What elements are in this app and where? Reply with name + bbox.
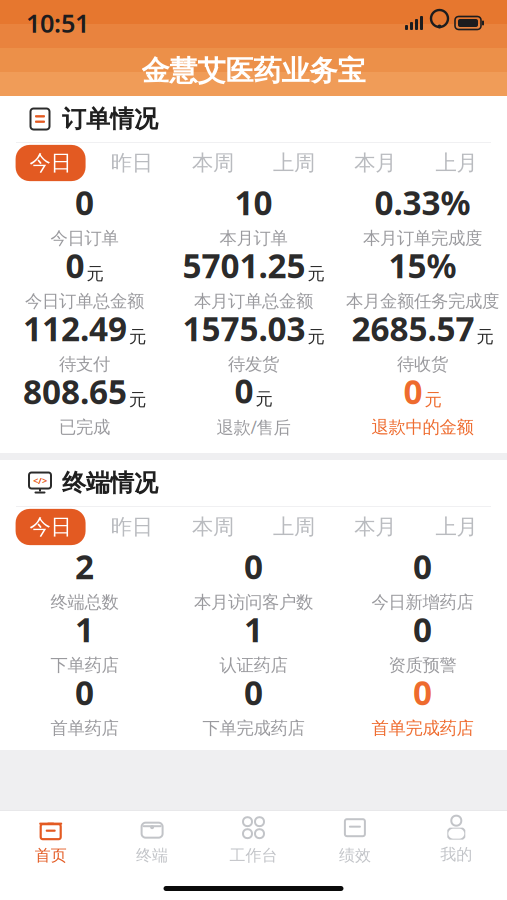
staticText: 1 xyxy=(244,607,263,651)
staticText: 0 xyxy=(413,544,432,588)
staticText: 112.49 xyxy=(23,306,127,350)
staticText: 下单药店 xyxy=(50,654,118,676)
button[interactable]: 工作台 xyxy=(203,812,304,868)
staticText: 资质预警 xyxy=(388,654,456,676)
button[interactable]: 本周 xyxy=(172,509,253,545)
staticText: 本月订单完成度 xyxy=(363,227,482,249)
staticText: 退款中的金额 xyxy=(371,416,473,438)
staticText: 本周 xyxy=(192,514,234,540)
staticText: 10:51 xyxy=(26,6,89,40)
button[interactable]: 上周 xyxy=(253,509,335,545)
staticText: 今日 xyxy=(30,150,72,176)
staticText: 0 xyxy=(413,670,432,714)
button[interactable]: 上月 xyxy=(416,509,497,545)
staticText: 下单完成药店 xyxy=(202,717,304,739)
staticText: 退款/售后 xyxy=(216,416,290,439)
staticText: 元 xyxy=(424,389,441,410)
button[interactable]: 上周 xyxy=(253,145,335,181)
staticText: 上月 xyxy=(435,514,477,540)
button[interactable]: 本月 xyxy=(335,145,416,181)
staticText: 认证药店 xyxy=(219,654,287,676)
staticText: </> xyxy=(33,474,47,487)
button[interactable]: 昨日 xyxy=(91,509,172,545)
staticText: 808.65 xyxy=(23,369,127,413)
staticText: 0 xyxy=(244,670,263,714)
staticText: 元 xyxy=(86,263,103,284)
staticText: 元 xyxy=(476,326,493,347)
staticText: 首单完成药店 xyxy=(371,717,473,739)
staticText: 本月 xyxy=(354,150,396,176)
staticText: 本月订单 xyxy=(219,227,287,249)
staticText: 终端总数 xyxy=(50,591,118,613)
staticText: 1575.03 xyxy=(182,306,305,350)
staticText: 绩效 xyxy=(339,846,371,865)
staticText: 10 xyxy=(234,180,272,224)
button[interactable]: 绩效 xyxy=(304,812,406,868)
staticText: 2685.57 xyxy=(351,306,474,350)
staticText: 元 xyxy=(129,326,146,347)
staticText: 5701.25 xyxy=(182,243,305,287)
staticText: 1 xyxy=(75,607,94,651)
staticText: 首单药店 xyxy=(50,717,118,739)
button[interactable]: 我的 xyxy=(406,812,507,868)
staticText: 上周 xyxy=(273,150,315,176)
staticText: 本月访问客户数 xyxy=(194,591,313,613)
staticText: 0 xyxy=(75,180,94,224)
staticText: 15% xyxy=(388,243,456,287)
staticText: 我的 xyxy=(440,845,472,864)
button[interactable]: 终端 xyxy=(101,812,203,868)
staticText: 本周 xyxy=(192,150,234,176)
staticText: 0 xyxy=(403,369,422,413)
staticText: 0 xyxy=(75,670,94,714)
staticText: 本月金额任务完成度 xyxy=(346,290,499,312)
staticText: 本月 xyxy=(354,514,396,540)
staticText: 终端 xyxy=(136,846,168,865)
button[interactable]: 本周 xyxy=(172,145,253,181)
staticText: 昨日 xyxy=(111,514,153,540)
staticText: 金慧艾医药业务宝 xyxy=(141,54,365,88)
staticText: 0 xyxy=(244,544,263,588)
staticText: 本月订单总金额 xyxy=(194,290,313,312)
staticText: 0 xyxy=(234,368,253,413)
staticText: 工作台 xyxy=(229,846,277,865)
staticText: 元 xyxy=(129,389,146,410)
staticText: 首页 xyxy=(35,846,67,865)
staticText: 待支付 xyxy=(59,353,110,375)
staticText: 元 xyxy=(307,326,324,347)
button[interactable]: 上月 xyxy=(416,145,497,181)
button[interactable]: 今日 xyxy=(10,509,91,545)
staticText: 终端情况 xyxy=(62,468,158,498)
staticText: 元 xyxy=(255,388,272,410)
button[interactable]: 昨日 xyxy=(91,145,172,181)
button[interactable]: ⌂ xyxy=(0,812,101,868)
staticText: 待收货 xyxy=(397,353,448,375)
staticText: 今日订单 xyxy=(50,227,118,249)
staticText: 0.33% xyxy=(374,180,470,224)
staticText: 已完成 xyxy=(59,416,110,438)
staticText: 订单情况 xyxy=(62,104,158,134)
button[interactable]: 今日 xyxy=(10,145,91,181)
staticText: 0 xyxy=(65,243,84,287)
staticText: 今日 xyxy=(30,514,72,540)
staticText: 昨日 xyxy=(111,150,153,176)
staticText: 今日新增药店 xyxy=(371,591,473,613)
staticText: 上周 xyxy=(273,514,315,540)
staticText: 今日订单总金额 xyxy=(25,290,144,312)
button[interactable]: 本月 xyxy=(335,509,416,545)
staticText: 上月 xyxy=(435,150,477,176)
staticText: 待发货 xyxy=(228,353,279,375)
staticText: 元 xyxy=(307,263,324,284)
staticText: 0 xyxy=(413,607,432,651)
staticText: 2 xyxy=(75,544,94,588)
